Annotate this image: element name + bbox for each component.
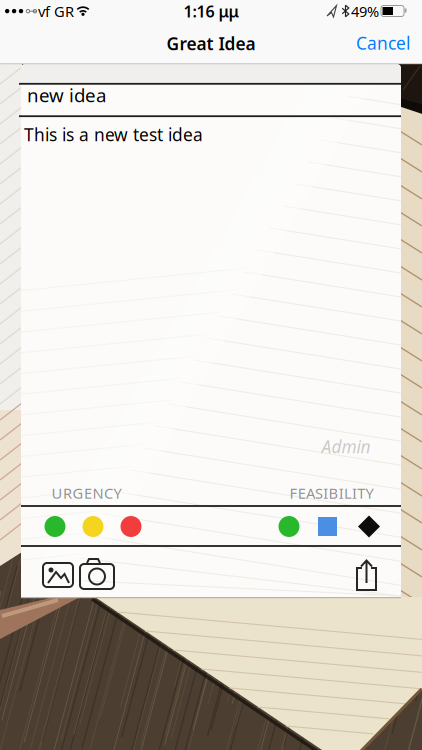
staticText: vf GR <box>38 2 74 21</box>
staticText: URGENCY <box>51 483 121 503</box>
button[interactable]: Share <box>357 560 376 590</box>
staticText: new idea <box>27 82 106 107</box>
button[interactable]: Take photo <box>80 559 114 590</box>
button[interactable]: Easy feasibility <box>278 516 299 537</box>
button[interactable]: Low urgency <box>44 516 65 537</box>
staticText: Great Idea <box>166 32 255 55</box>
staticText: 1:16 μμ <box>183 1 238 22</box>
button[interactable]: Hard feasibility <box>358 515 380 537</box>
button[interactable]: High urgency <box>120 516 141 537</box>
staticText: This is a new test idea <box>24 123 203 146</box>
staticText: Admin <box>321 435 370 458</box>
button[interactable]: Medium urgency <box>82 516 103 537</box>
button[interactable]: Cancel <box>356 31 410 54</box>
button[interactable]: Add photo from library <box>43 563 73 587</box>
staticText: Cancel <box>356 31 410 54</box>
staticText: FEASIBILITY <box>289 483 373 503</box>
staticText: 49% <box>351 2 379 21</box>
